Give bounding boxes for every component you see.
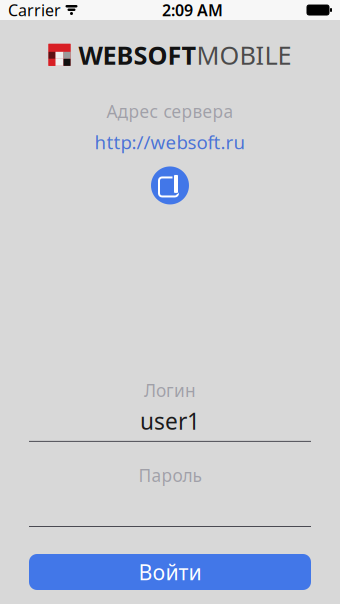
staticText: WEBSOFT [78, 38, 196, 72]
staticText: Carrier [8, 0, 61, 21]
staticText: http://websoft.ru [94, 130, 245, 154]
staticText: Войти [138, 558, 201, 586]
staticText: Логин [144, 379, 196, 402]
staticText: Пароль [138, 464, 201, 487]
button[interactable]: Войти [29, 554, 311, 590]
button[interactable]: Изменить адрес сервера [148, 163, 192, 207]
button[interactable]: http://websoft.ru [86, 127, 253, 157]
staticText: Адрес сервера [106, 100, 233, 123]
staticText: user1 [140, 406, 200, 436]
staticText: MOBILE [196, 38, 291, 72]
staticText: 2:09 AM [162, 0, 223, 21]
